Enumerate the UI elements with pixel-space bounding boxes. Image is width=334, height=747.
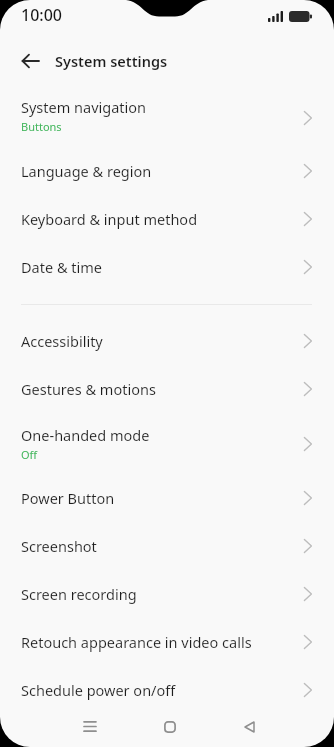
button[interactable]: System navigation — [0, 88, 334, 147]
button[interactable] — [76, 714, 104, 747]
button[interactable]: Screen recording — [0, 570, 334, 618]
staticText: Screenshot — [21, 536, 97, 556]
button[interactable]: Gestures & motions — [0, 365, 334, 413]
button[interactable]: Date & time — [0, 243, 334, 291]
staticText: Language & region — [21, 161, 152, 181]
staticText: Power Button — [21, 488, 115, 508]
staticText: System settings — [55, 51, 168, 71]
staticText: Retouch appearance in video calls — [21, 632, 252, 652]
button[interactable] — [156, 714, 184, 747]
button[interactable]: Language & region — [0, 147, 334, 195]
button[interactable]: Accessibility — [0, 317, 334, 365]
staticText: Date & time — [21, 257, 102, 277]
staticText: One-handed mode — [21, 425, 150, 445]
staticText: Accessibility — [21, 331, 103, 351]
button[interactable] — [10, 41, 50, 81]
staticText: Off — [21, 447, 38, 462]
button[interactable]: Power Button — [0, 474, 334, 522]
staticText: Buttons — [21, 119, 62, 134]
staticText: Schedule power on/off — [21, 680, 176, 700]
button[interactable]: Schedule power on/off — [0, 666, 334, 714]
button[interactable]: One-handed mode — [0, 413, 334, 474]
staticText: 10:00 — [21, 4, 62, 26]
staticText: Keyboard & input method — [21, 209, 198, 229]
staticText: Gestures & motions — [21, 379, 156, 399]
button[interactable] — [235, 714, 263, 747]
staticText: Screen recording — [21, 584, 137, 604]
button[interactable]: Keyboard & input method — [0, 195, 334, 243]
staticText: System navigation — [21, 97, 147, 117]
button[interactable]: Screenshot — [0, 522, 334, 570]
button[interactable]: Retouch appearance in video calls — [0, 618, 334, 666]
